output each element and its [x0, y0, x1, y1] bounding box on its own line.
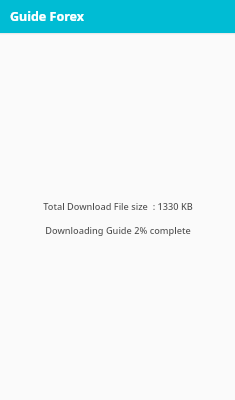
staticText: Total Download File size : 1330 KB — [43, 200, 193, 213]
staticText: Downloading Guide 2% complete — [45, 224, 191, 237]
staticText: Guide Forex — [10, 8, 84, 25]
button[interactable]: Guide Forex — [0, 0, 235, 33]
